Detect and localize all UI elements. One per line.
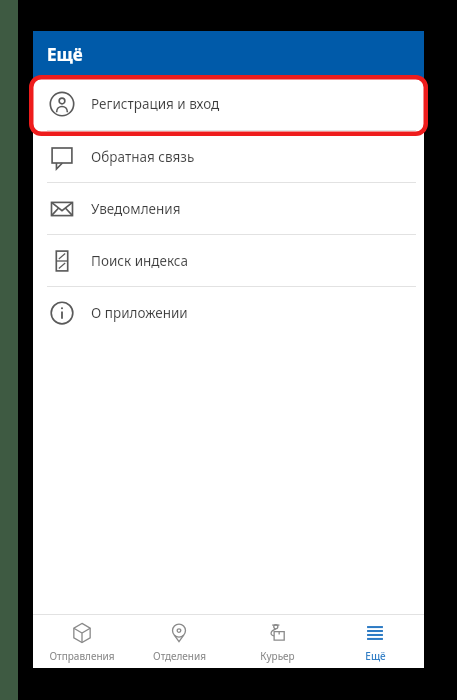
staticText: Отправления (49, 649, 115, 663)
staticText: Обратная связь (91, 148, 195, 166)
staticText: Ещё (365, 649, 386, 663)
button[interactable]: Уведомления (33, 183, 424, 234)
button[interactable]: Регистрация и вход (33, 78, 424, 130)
button[interactable]: О приложении (33, 287, 424, 338)
staticText: Регистрация и вход (91, 95, 220, 113)
staticText: О приложении (91, 304, 188, 322)
button[interactable]: Обратная связь (33, 131, 424, 182)
staticText: Поиск индекса (91, 252, 188, 270)
staticText: Курьер (260, 649, 295, 663)
staticText: Отделения (153, 649, 206, 663)
staticText: Ещё (47, 43, 83, 66)
staticText: Уведомления (91, 200, 181, 218)
button[interactable]: Поиск индекса (33, 235, 424, 286)
button[interactable]: Курьер (228, 615, 326, 668)
button[interactable]: Отправления (33, 615, 130, 668)
button[interactable]: Отделения (130, 615, 228, 668)
button[interactable]: Ещё (326, 615, 424, 668)
